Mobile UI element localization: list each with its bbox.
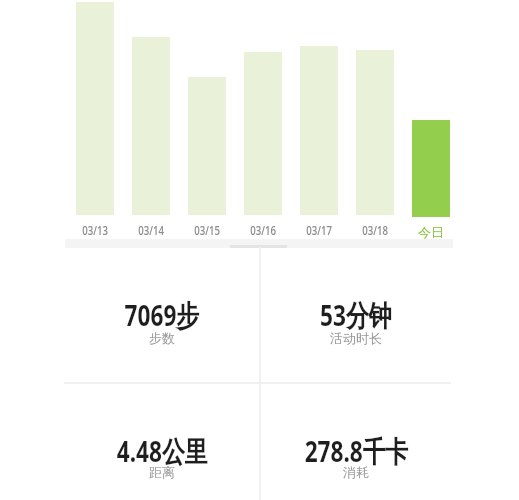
staticText: 今日 xyxy=(418,224,444,240)
button[interactable]: 278.8千卡 xyxy=(256,421,456,481)
staticText: 7069步 xyxy=(125,295,199,335)
staticText: 278.8千卡 xyxy=(305,431,408,471)
staticText: 03/16 xyxy=(250,222,277,238)
staticText: 03/15 xyxy=(194,222,221,238)
staticText: 步数 xyxy=(149,330,175,346)
button[interactable]: 4.48公里 xyxy=(62,421,262,481)
staticText: 03/18 xyxy=(362,222,389,238)
button[interactable]: 7069步 xyxy=(62,285,262,345)
staticText: 03/13 xyxy=(82,222,109,238)
button[interactable]: 53分钟 xyxy=(256,285,456,345)
staticText: 53分钟 xyxy=(320,295,392,335)
staticText: 消耗 xyxy=(343,464,369,480)
staticText: 距离 xyxy=(149,464,175,480)
staticText: 活动时长 xyxy=(330,330,382,346)
staticText: 4.48公里 xyxy=(117,431,207,471)
staticText: 03/17 xyxy=(306,222,333,238)
staticText: 03/14 xyxy=(138,222,165,238)
